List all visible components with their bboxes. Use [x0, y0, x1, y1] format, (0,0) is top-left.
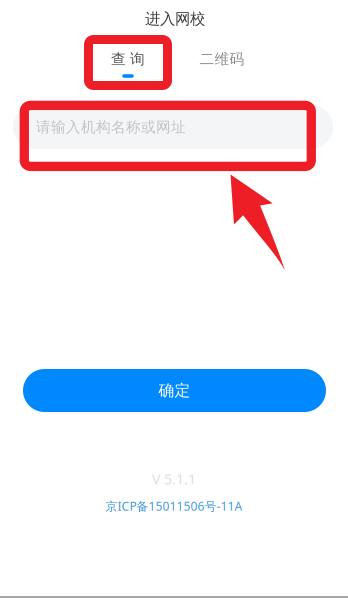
staticText: 确定 — [158, 381, 190, 400]
staticText: 进入网校 — [145, 9, 205, 29]
button[interactable]: 二维码 — [182, 40, 262, 82]
staticText: V 5.1.1 — [152, 469, 196, 489]
button[interactable]: 确定 — [23, 369, 326, 412]
button[interactable]: 请输入机构名称或网址 — [13, 105, 333, 149]
staticText: 二维码 — [199, 50, 244, 68]
staticText: 请输入机构名称或网址 — [36, 118, 186, 136]
button[interactable]: 查 询 — [88, 40, 168, 82]
staticText: 查 询 — [111, 50, 145, 68]
button[interactable]: 京ICP备15011506号-11A — [0, 498, 348, 514]
staticText: 京ICP备15011506号-11A — [105, 498, 242, 514]
